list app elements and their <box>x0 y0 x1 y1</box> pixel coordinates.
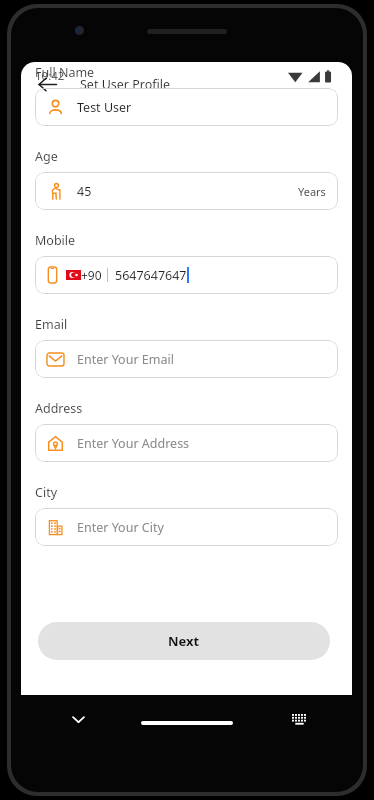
staticText: 45 <box>77 183 92 200</box>
button[interactable]: Home <box>141 721 233 725</box>
button[interactable]: Back <box>29 66 65 102</box>
staticText: Enter Your Email <box>77 351 174 368</box>
staticText: Next <box>168 632 200 650</box>
staticText: 5647647647 <box>115 267 187 284</box>
staticText: City <box>35 484 58 501</box>
staticText: Address <box>35 400 83 417</box>
staticText: Age <box>35 148 58 165</box>
staticText: Mobile <box>35 232 76 249</box>
staticText: Set User Profile <box>80 76 171 93</box>
button[interactable]: Test User <box>35 88 338 126</box>
button[interactable]: Next <box>38 622 330 660</box>
staticText: Test User <box>77 99 132 116</box>
button[interactable]: Switch keyboard <box>284 704 314 734</box>
staticText: Email <box>35 316 68 333</box>
button[interactable]: Enter Your City <box>35 508 338 546</box>
button[interactable]: Hide keyboard <box>61 702 95 736</box>
button[interactable]: 45 <box>35 172 338 210</box>
staticText: Full Name <box>35 64 95 81</box>
staticText: +90 <box>81 267 102 283</box>
staticText: Enter Your City <box>77 519 164 536</box>
staticText: 10:42 <box>35 68 65 84</box>
staticText: Enter Your Address <box>77 435 190 452</box>
button[interactable]: +90 <box>35 256 338 294</box>
button[interactable]: Enter Your Address <box>35 424 338 462</box>
staticText: Years <box>298 184 326 199</box>
button[interactable]: Enter Your Email <box>35 340 338 378</box>
